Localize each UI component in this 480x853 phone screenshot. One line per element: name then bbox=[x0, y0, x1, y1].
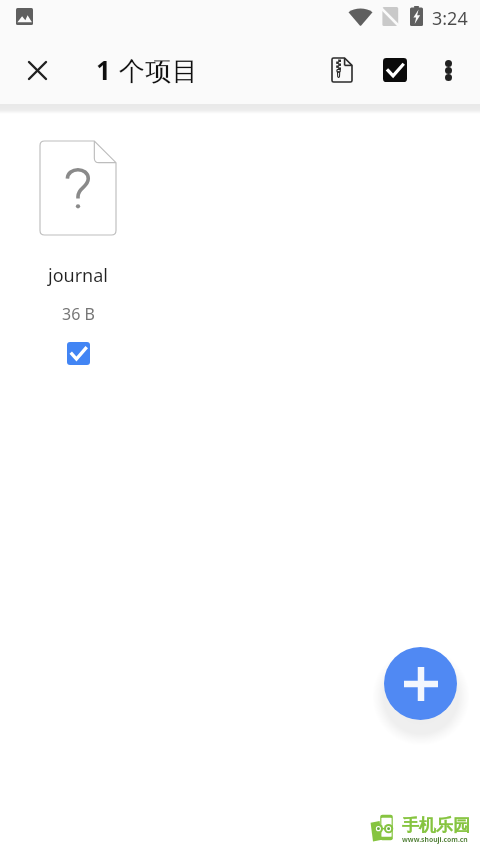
button[interactable]: More options bbox=[424, 46, 472, 94]
button[interactable]: Compress bbox=[318, 46, 366, 94]
staticText: 手机乐园 bbox=[402, 815, 470, 836]
staticText: www.shouji.com.cn bbox=[402, 835, 468, 844]
staticText: 1 个项目 bbox=[96, 52, 199, 88]
staticText: 3:24 bbox=[432, 6, 468, 31]
button[interactable]: journal, 36 B, selected bbox=[3, 124, 153, 364]
button[interactable]: Add bbox=[384, 647, 457, 720]
staticText: 36 B bbox=[62, 303, 95, 325]
staticText: journal bbox=[48, 263, 108, 288]
button[interactable]: Close bbox=[9, 42, 65, 98]
button[interactable]: Select all bbox=[371, 46, 419, 94]
